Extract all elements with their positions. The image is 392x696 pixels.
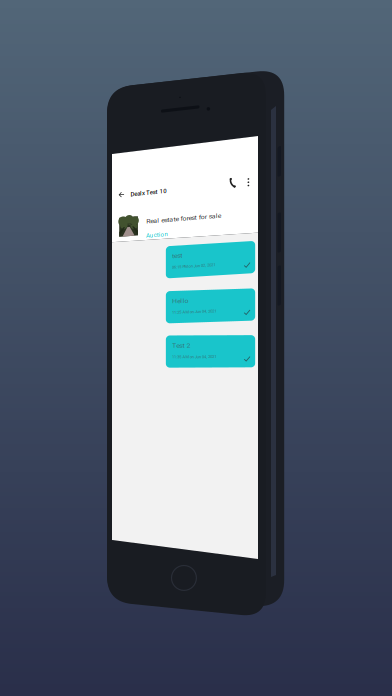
staticText: Real estate forest for sale bbox=[146, 218, 220, 225]
staticText: Hello bbox=[172, 298, 188, 305]
staticText: test bbox=[172, 253, 182, 260]
button[interactable]: Hello bbox=[166, 291, 252, 324]
staticText: Dealx Test 10 bbox=[130, 191, 168, 198]
staticText: Auction bbox=[146, 232, 169, 239]
button[interactable]: More options bbox=[247, 178, 249, 186]
staticText: Test 2 bbox=[172, 342, 190, 349]
staticText: 11:25 AM on Jun 04, 2021 bbox=[172, 311, 215, 315]
button[interactable]: Back bbox=[119, 191, 125, 199]
staticText: 11:35 AM on Jun 04, 2021 bbox=[172, 355, 215, 359]
button[interactable]: Test 2 bbox=[166, 335, 252, 368]
staticText: 06:15 PM on Jun 02, 2021 bbox=[172, 266, 214, 270]
button[interactable]: Call bbox=[230, 178, 235, 188]
button[interactable]: test bbox=[166, 246, 252, 279]
